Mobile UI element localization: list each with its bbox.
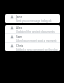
staticText: Updated the project documents here today — [16, 30, 58, 33]
button[interactable]: Alex — [5, 25, 60, 33]
staticText: Added a new comment on the doc today — [16, 48, 58, 51]
button[interactable]: Chris — [5, 43, 60, 51]
staticText: Liked your recent post a moment ago now — [16, 39, 58, 42]
staticText: Sent you a message today ok — [16, 19, 52, 23]
button[interactable]: Sam — [5, 34, 60, 42]
button[interactable]: Jane — [5, 14, 60, 23]
staticText: Chris — [16, 44, 24, 48]
staticText: Sam — [16, 35, 23, 39]
staticText: Jane — [16, 15, 23, 19]
staticText: Alex — [16, 26, 23, 30]
